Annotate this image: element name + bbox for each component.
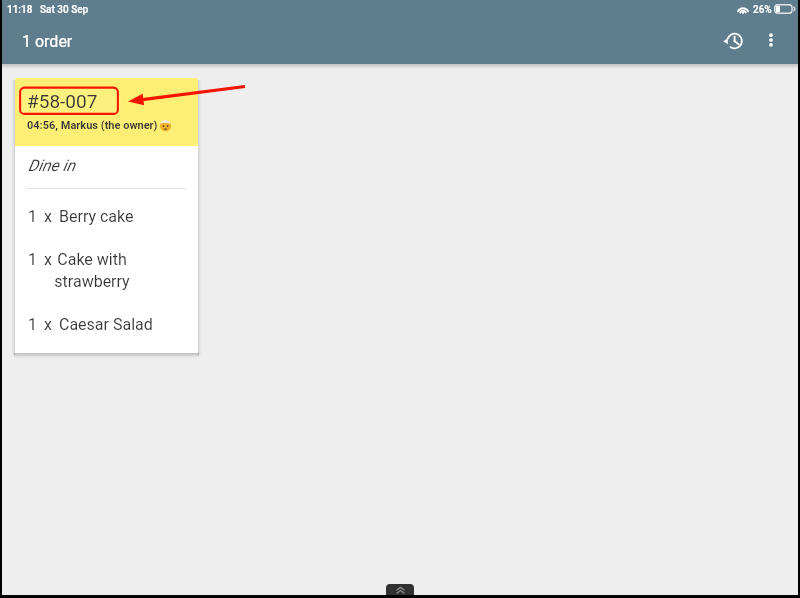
staticText: Berry cake xyxy=(59,205,134,227)
staticText: Sat 30 Sep xyxy=(40,3,89,15)
staticText: 1 xyxy=(28,313,37,335)
staticText: 1 xyxy=(28,248,37,270)
staticText: x xyxy=(44,313,52,335)
staticText: 04:56, Markus (the owner) xyxy=(27,119,158,131)
button[interactable]: More options xyxy=(749,18,793,62)
staticText: x xyxy=(44,205,52,227)
button[interactable]: Order history xyxy=(711,18,757,64)
staticText: Caesar Salad xyxy=(59,313,153,335)
staticText: 26% xyxy=(753,3,772,15)
staticText: Cake with strawberry xyxy=(51,248,133,292)
staticText: Dine in xyxy=(28,156,76,175)
staticText: 11:18 xyxy=(7,3,33,15)
staticText: x xyxy=(44,248,52,270)
button[interactable]: Show navigation bar xyxy=(386,584,414,595)
staticText: 1 order xyxy=(22,32,73,51)
button[interactable]: #58-007 xyxy=(15,78,198,353)
staticText: #58-007 xyxy=(27,91,98,113)
staticText: 1 xyxy=(28,205,37,227)
